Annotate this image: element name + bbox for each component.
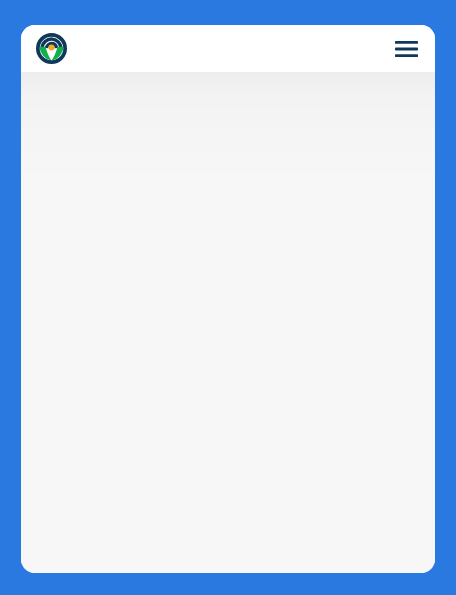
button[interactable]: Home logo xyxy=(36,33,67,64)
button[interactable]: Open menu xyxy=(392,35,420,63)
